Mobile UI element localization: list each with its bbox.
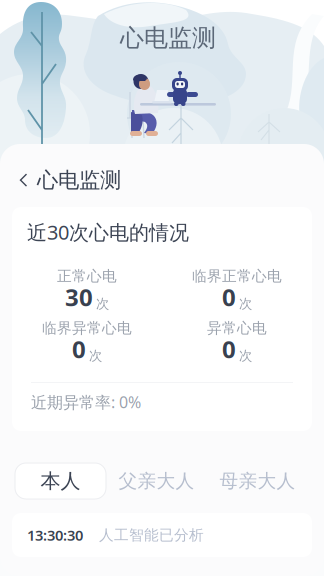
staticText: 13:30:30 — [27, 525, 83, 545]
staticText: 0 — [222, 281, 236, 313]
button[interactable]: 返回 — [0, 144, 324, 194]
staticText: 心电监测 — [37, 167, 121, 193]
button[interactable]: 本人 — [15, 463, 106, 499]
staticText: 次 — [239, 296, 252, 312]
staticText: 0 — [222, 333, 236, 365]
staticText: 父亲大人 — [118, 469, 194, 492]
staticText: 临界正常心电 — [192, 267, 282, 285]
staticText: 正常心电 — [57, 267, 117, 285]
button[interactable]: 母亲大人 — [207, 463, 308, 499]
staticText: 本人 — [40, 469, 80, 493]
staticText: 人工智能已分析 — [99, 526, 204, 544]
button[interactable]: 父亲大人 — [106, 463, 207, 499]
button[interactable]: 13:30:30 — [12, 513, 312, 557]
staticText: 心电监测 — [120, 23, 216, 53]
staticText: 0 — [72, 333, 86, 365]
staticText: 近30次心电的情况 — [27, 219, 189, 245]
staticText: 异常心电 — [207, 319, 267, 337]
staticText: 近期异常率: 0% — [31, 391, 141, 413]
staticText: 次 — [239, 348, 252, 364]
staticText: 临界异常心电 — [42, 319, 132, 337]
staticText: 母亲大人 — [219, 469, 295, 492]
staticText: 次 — [89, 348, 102, 364]
staticText: 30 — [65, 281, 93, 313]
staticText: 次 — [96, 296, 109, 312]
